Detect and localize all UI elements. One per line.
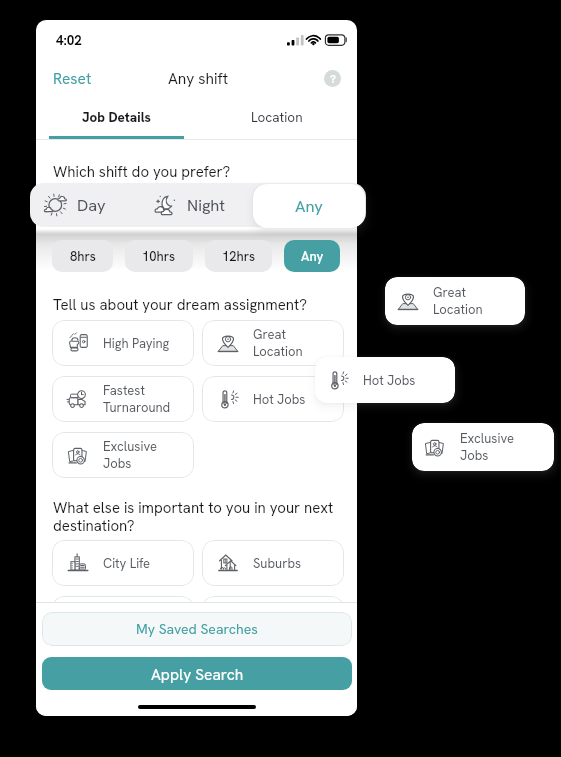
staticText: Hot Jobs [253,391,306,408]
button[interactable]: My Saved Searches [42,612,352,646]
staticText: Any shift [168,68,229,88]
staticText: 4:02 [56,31,82,49]
staticText: Suburbs [253,555,302,572]
button[interactable]: Any [253,184,365,228]
button[interactable]: City Life [52,540,194,586]
staticText: My Saved Searches [136,620,258,638]
staticText: Reset [53,68,92,88]
staticText: Which shift do you prefer? [53,162,231,182]
staticText: Great [253,326,286,343]
staticText: Location [433,301,483,318]
staticText: Exclusive [460,430,514,447]
button[interactable]: Day [30,183,140,227]
staticText: ? [330,71,336,86]
button[interactable]: 10hrs [125,240,193,272]
button[interactable]: Apply Search [42,657,352,690]
button[interactable]: 8hrs [52,240,113,272]
staticText: Job Details [82,108,151,126]
staticText: What else is important to you in your ne… [53,498,343,535]
button[interactable]: 12hrs [205,240,272,272]
button[interactable]: Beach [52,596,194,642]
button[interactable]: Any [284,240,340,272]
staticText: Night [187,194,225,215]
button[interactable]: Hot Jobs [202,376,344,422]
staticText: 8hrs [70,248,96,265]
button[interactable]: Great [385,277,525,325]
button[interactable]: Fastest [52,376,194,422]
staticText: Turnaround [103,399,171,416]
button[interactable]: Mountains [202,596,344,642]
button[interactable]: Great [202,320,344,366]
button[interactable]: Help [324,70,341,87]
button[interactable]: Suburbs [202,540,344,586]
staticText: Exclusive [103,438,157,455]
staticText: Tell us about your dream assignment? [53,295,307,315]
staticText: 10hrs [142,248,176,265]
staticText: Jobs [460,447,489,464]
staticText: Day [77,194,106,215]
staticText: Apply Search [151,664,244,684]
staticText: Hot Jobs [363,372,416,389]
button[interactable]: Night [140,183,250,227]
button[interactable]: Reset [46,65,99,91]
staticText: Beach [103,611,139,628]
staticText: 12hrs [222,248,256,265]
button[interactable]: Exclusive [412,423,554,471]
button[interactable]: Hot Jobs [315,357,455,403]
staticText: High Paying [103,335,170,352]
staticText: Any [301,248,324,265]
staticText: Any [295,195,323,216]
staticText: Mountains [253,611,314,628]
staticText: Great [433,284,466,301]
button[interactable]: High Paying [52,320,194,366]
staticText: City Life [103,555,151,572]
staticText: Location [253,343,303,360]
staticText: Fastest [103,382,145,399]
button[interactable]: Job Details [36,102,196,142]
staticText: Jobs [103,455,132,472]
button[interactable]: Exclusive [52,432,194,478]
button[interactable]: Location [197,102,357,142]
staticText: Location [251,108,303,126]
